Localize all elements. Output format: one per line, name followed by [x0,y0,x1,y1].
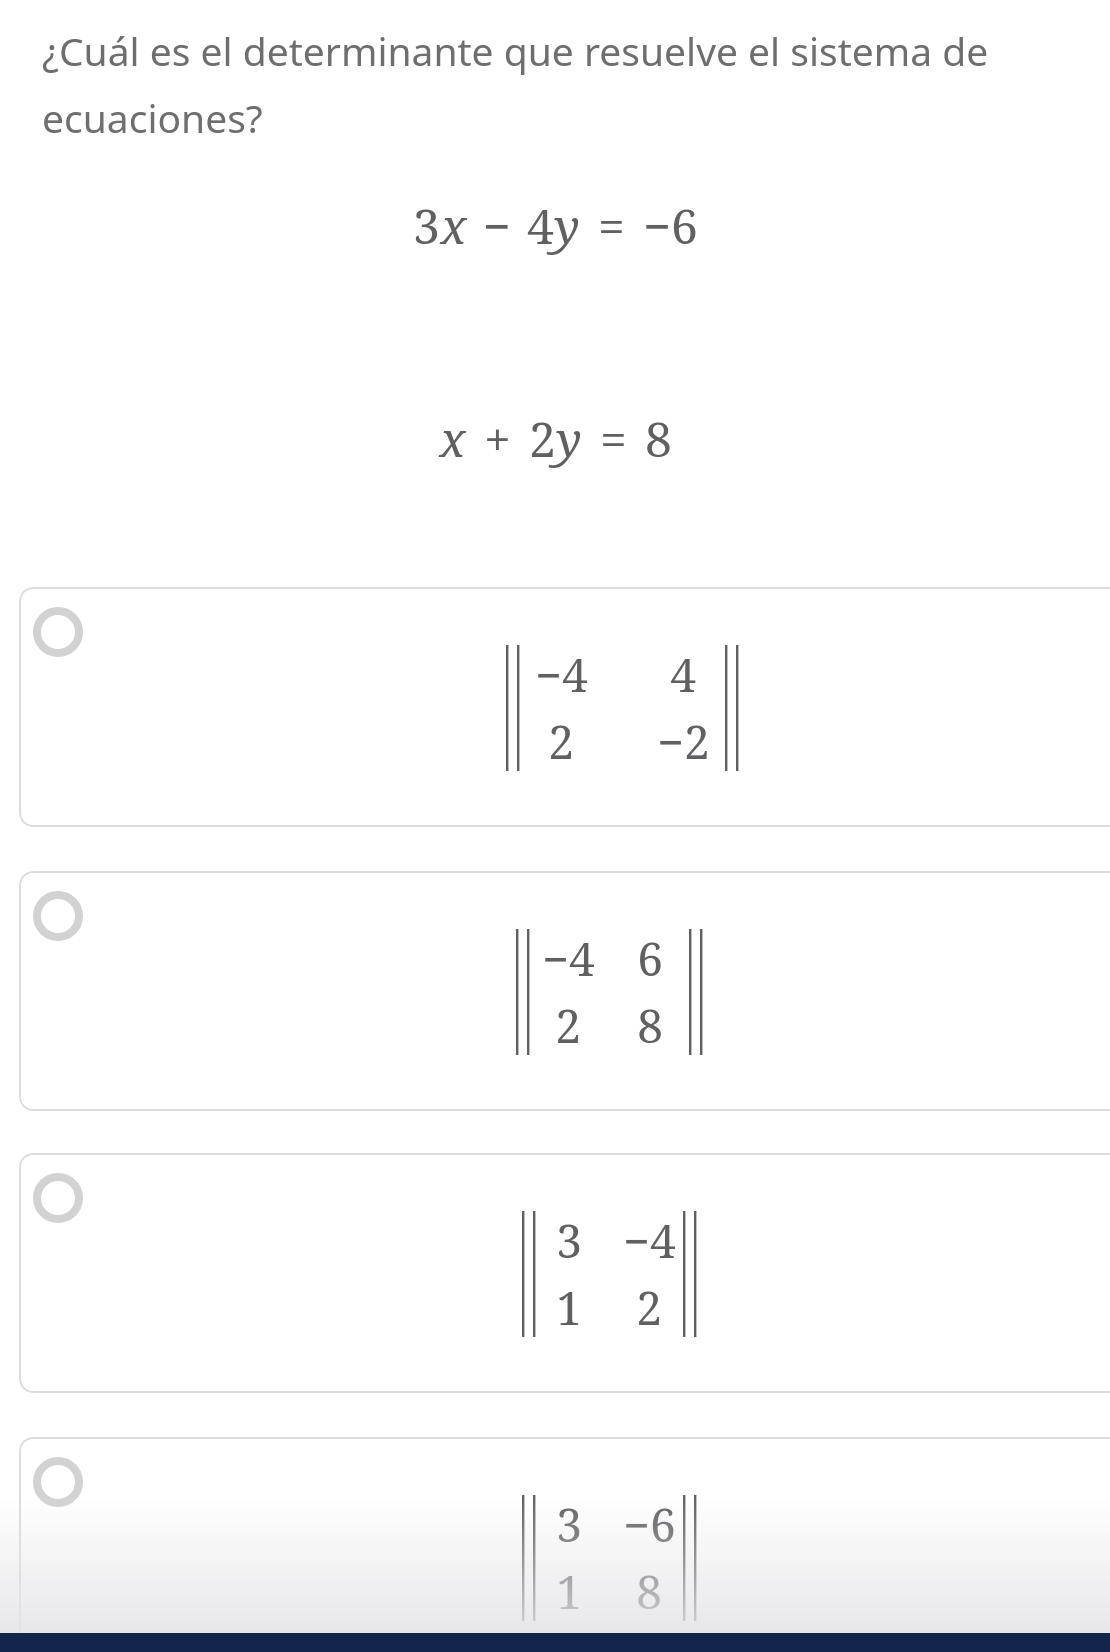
staticText: x [440,193,467,258]
staticText: 2 [636,1276,662,1339]
staticText: 4 [670,643,696,706]
staticText: 3 [413,193,440,258]
button[interactable]: Opción: determinante menos 4, 6, 2, 8 [19,871,1110,1111]
staticText: 2 [529,406,556,471]
staticText: 3 [556,1493,582,1556]
staticText: −4 [623,1209,676,1272]
staticText: 8 [636,1560,662,1623]
staticText: 8 [637,994,663,1057]
staticText: 3 [556,1209,582,1272]
staticText: 2 [555,994,581,1057]
staticText: −4 [542,927,595,990]
staticText: 2 [548,710,574,773]
staticText: 1 [556,1276,582,1339]
staticText: y [556,406,582,471]
staticText: 6 [637,927,663,990]
staticText: x [439,406,466,471]
staticText: = [598,193,625,258]
button[interactable]: Opción: determinante menos 4, 4, 2, meno… [19,587,1110,827]
staticText: −4 [535,643,588,706]
staticText: 4 [527,193,554,258]
staticText: 8 [645,406,672,471]
staticText: = [600,406,627,471]
staticText: ¿Cuál es el determinante que resuelve el… [42,24,1072,145]
staticText: 1 [556,1560,582,1623]
staticText: + [484,406,511,471]
staticText: −6 [643,193,698,258]
button[interactable]: Opción: determinante 3, menos 4, 1, 2 [19,1153,1110,1393]
staticText: − [483,193,511,258]
staticText: y [554,193,580,258]
staticText: −6 [623,1493,676,1556]
button[interactable]: Opción: determinante 3, menos 6, 1, 8 [19,1437,1110,1652]
staticText: −2 [657,710,710,773]
